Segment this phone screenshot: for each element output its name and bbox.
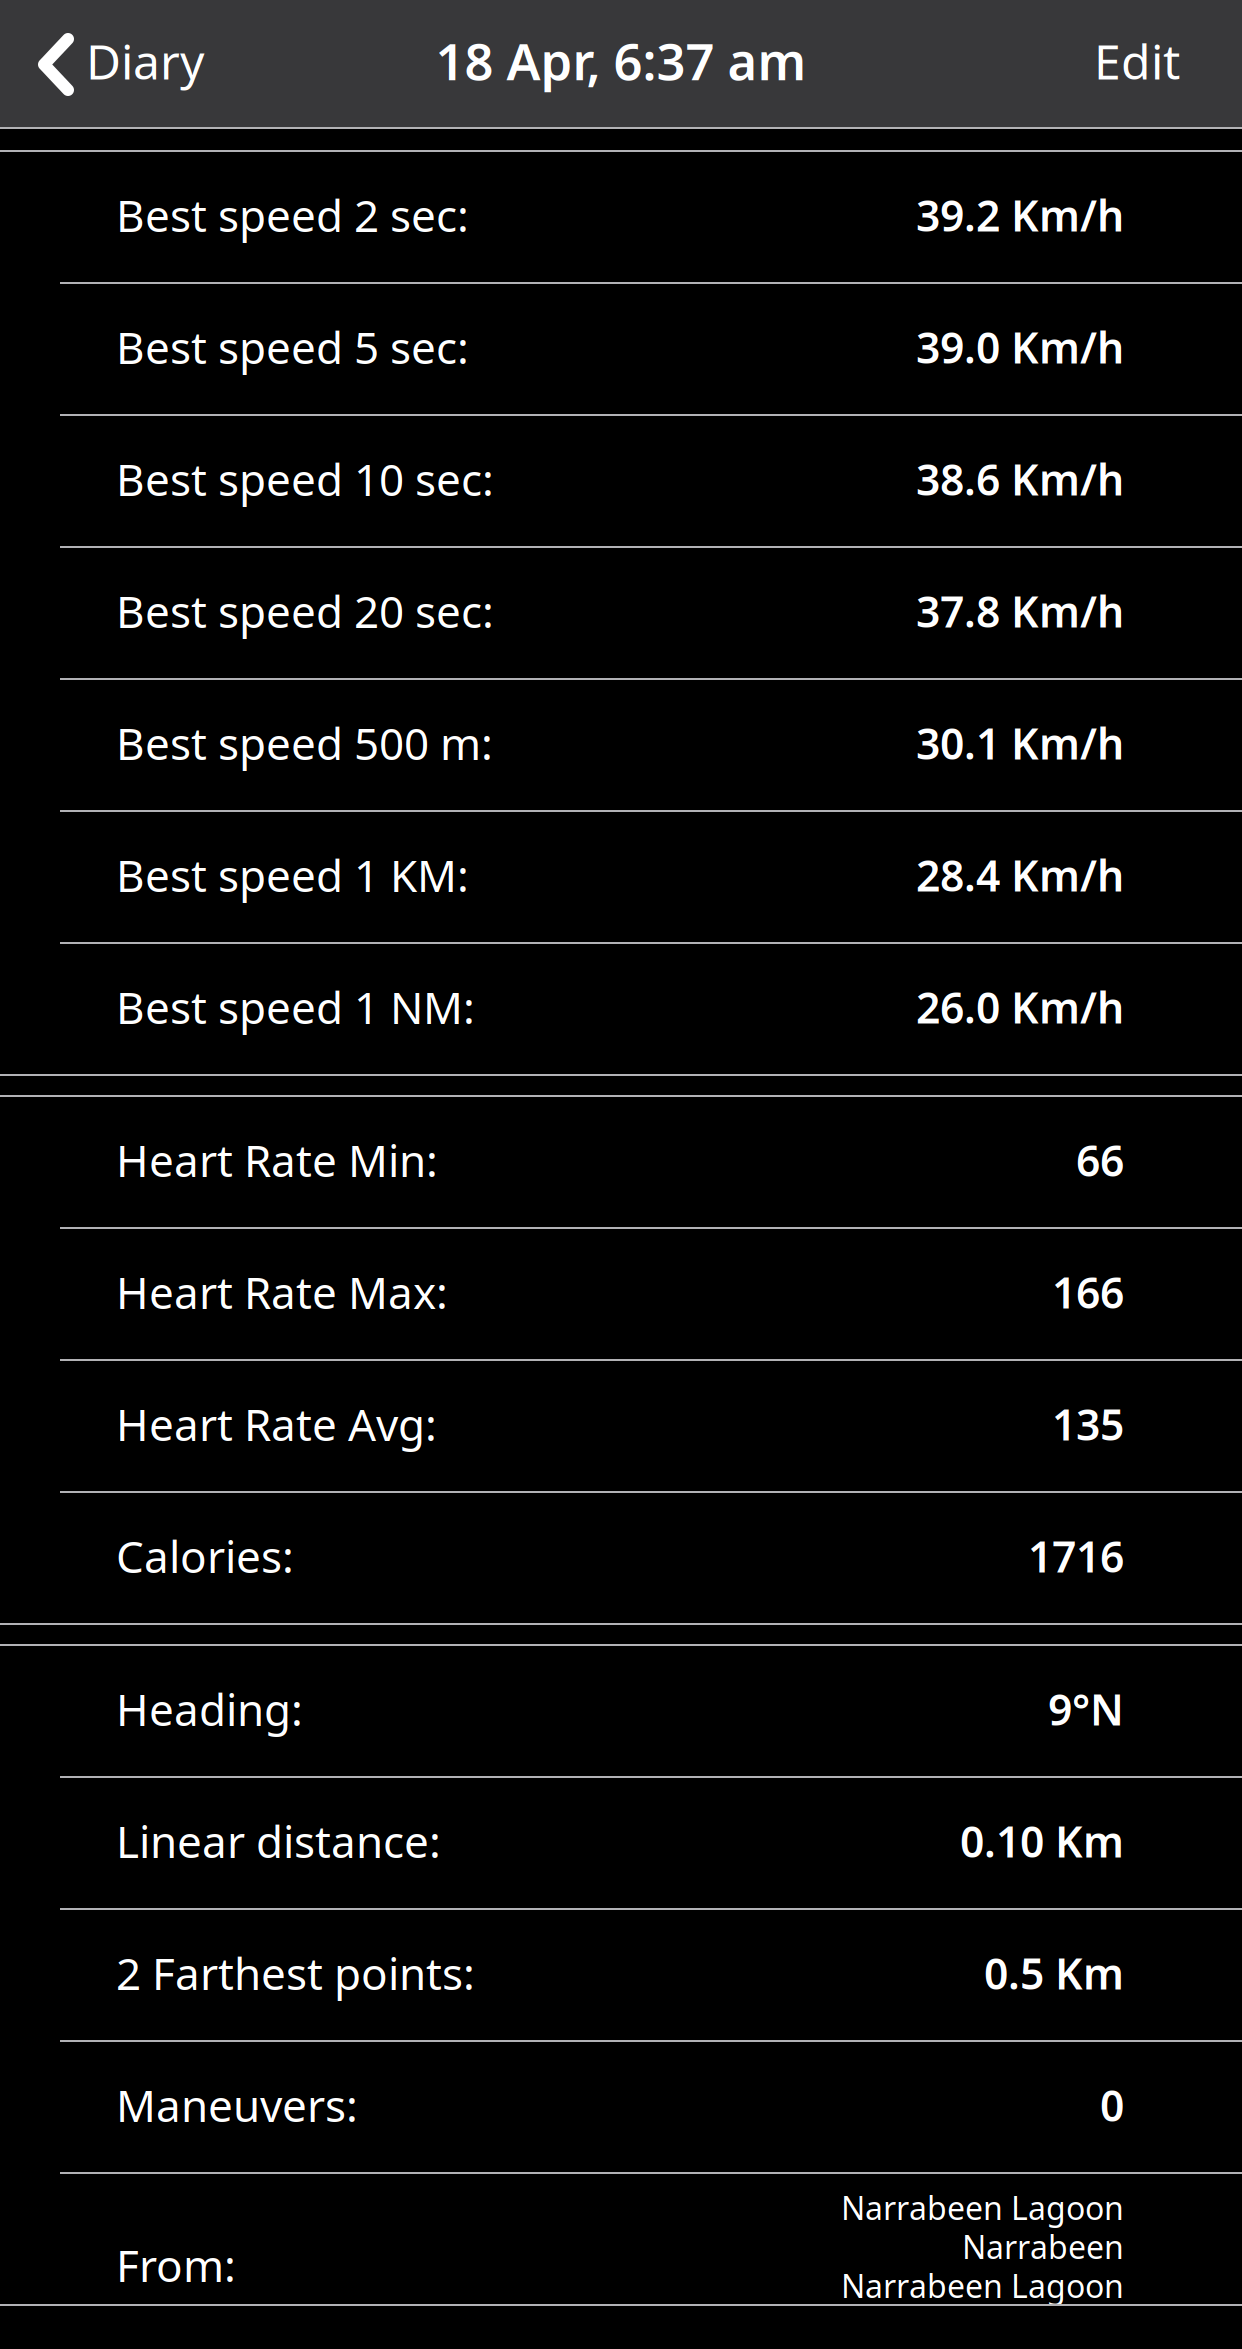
staticText: 39.0 Km/h <box>916 319 1124 375</box>
staticText: Narrabeen Lagoon <box>841 2186 1124 2229</box>
button[interactable]: Heart Rate Min: <box>0 1097 1242 1229</box>
staticText: From: <box>116 2236 236 2294</box>
button[interactable]: Edit <box>1064 0 1242 129</box>
staticText: Best speed 500 m: <box>116 714 493 772</box>
button[interactable]: Linear distance: <box>0 1778 1242 1910</box>
button[interactable]: From: <box>0 2174 1242 2306</box>
staticText: Heart Rate Avg: <box>116 1395 437 1453</box>
staticText: 0.10 Km <box>960 1813 1124 1869</box>
staticText: Diary <box>86 29 204 93</box>
button[interactable]: Best speed 2 sec: <box>0 152 1242 284</box>
button[interactable]: Best speed 500 m: <box>0 680 1242 812</box>
staticText: 166 <box>1052 1264 1124 1320</box>
button[interactable]: Best speed 5 sec: <box>0 284 1242 416</box>
button[interactable]: Calories: <box>0 1493 1242 1625</box>
staticText: Best speed 1 KM: <box>116 846 469 904</box>
staticText: Linear distance: <box>116 1812 441 1870</box>
staticText: 18 Apr, 6:37 am <box>435 27 806 94</box>
staticText: 39.2 Km/h <box>916 187 1124 243</box>
button[interactable]: Best speed 1 NM: <box>0 944 1242 1076</box>
staticText: Best speed 2 sec: <box>116 186 469 244</box>
staticText: Maneuvers: <box>116 2076 358 2134</box>
staticText: 28.4 Km/h <box>916 847 1124 903</box>
staticText: 30.1 Km/h <box>916 715 1124 771</box>
staticText: Narrabeen <box>962 2225 1124 2268</box>
staticText: Calories: <box>116 1527 294 1585</box>
button[interactable]: Heart Rate Avg: <box>0 1361 1242 1493</box>
staticText: 1716 <box>1028 1528 1124 1584</box>
staticText: 0 <box>1100 2077 1124 2133</box>
button[interactable]: Heading: <box>0 1646 1242 1778</box>
staticText: Best speed 10 sec: <box>116 450 494 508</box>
button[interactable]: Best speed 1 KM: <box>0 812 1242 944</box>
button[interactable]: Heart Rate Max: <box>0 1229 1242 1361</box>
button[interactable]: Best speed 10 sec: <box>0 416 1242 548</box>
staticText: 9°N <box>1048 1681 1124 1737</box>
staticText: 2 Farthest points: <box>116 1944 475 2002</box>
staticText: 37.8 Km/h <box>916 583 1124 639</box>
staticText: Best speed 1 NM: <box>116 978 475 1036</box>
button[interactable]: Back to Diary <box>0 0 228 129</box>
staticText: Best speed 20 sec: <box>116 582 494 640</box>
staticText: 26.0 Km/h <box>916 979 1124 1035</box>
button[interactable]: Best speed 20 sec: <box>0 548 1242 680</box>
staticText: Edit <box>1094 29 1180 93</box>
staticText: 38.6 Km/h <box>916 451 1124 507</box>
staticText: 66 <box>1076 1132 1124 1188</box>
staticText: Heart Rate Max: <box>116 1263 448 1321</box>
staticText: 0.5 Km <box>984 1945 1124 2001</box>
staticText: Narrabeen Lagoon <box>841 2264 1124 2307</box>
staticText: 135 <box>1052 1396 1124 1452</box>
button[interactable]: Maneuvers: <box>0 2042 1242 2174</box>
staticText: Heading: <box>116 1680 303 1738</box>
staticText: Heart Rate Min: <box>116 1131 438 1189</box>
button[interactable]: 2 Farthest points: <box>0 1910 1242 2042</box>
staticText: Best speed 5 sec: <box>116 318 469 376</box>
